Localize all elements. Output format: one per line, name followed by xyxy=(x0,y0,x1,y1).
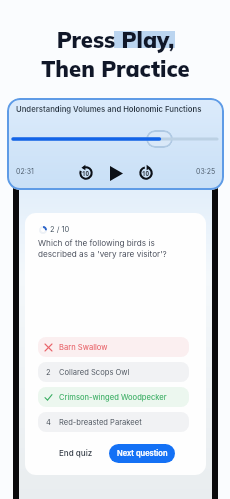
staticText: 4 xyxy=(46,418,51,427)
staticText: Barn Swallow xyxy=(59,343,108,352)
button[interactable]: 4 xyxy=(38,412,189,432)
staticText: 10 xyxy=(82,169,90,177)
button[interactable]: End quiz xyxy=(54,443,98,463)
staticText: 03:25 xyxy=(196,167,216,175)
button[interactable]: Forward 10 seconds xyxy=(136,163,156,183)
staticText: Press Play, Then Practice xyxy=(41,26,190,83)
staticText: 2 xyxy=(46,368,51,377)
staticText: Collared Scops Owl xyxy=(59,368,130,377)
staticText: End quiz xyxy=(59,448,93,458)
button[interactable]: Next question xyxy=(109,444,175,463)
staticText: Red-breasted Parakeet xyxy=(59,418,142,427)
staticText: Understanding Volumes and Holonomic Func… xyxy=(16,105,202,114)
button[interactable]: 2 xyxy=(38,362,189,382)
staticText: 02:31 xyxy=(16,167,34,175)
staticText: 10 xyxy=(142,169,150,177)
button[interactable]: Crimson-winged Woodpecker xyxy=(38,387,189,407)
button[interactable]: Play xyxy=(105,162,127,184)
staticText: Crimson-winged Woodpecker xyxy=(59,393,167,402)
staticText: Which of the following birds is describe… xyxy=(38,238,167,259)
staticText: 2 / 10 xyxy=(50,225,70,234)
button[interactable]: Seek xyxy=(146,130,173,148)
button[interactable]: Barn Swallow xyxy=(38,337,189,357)
button[interactable]: Rewind 10 seconds xyxy=(76,163,96,183)
staticText: Next question xyxy=(117,449,168,458)
